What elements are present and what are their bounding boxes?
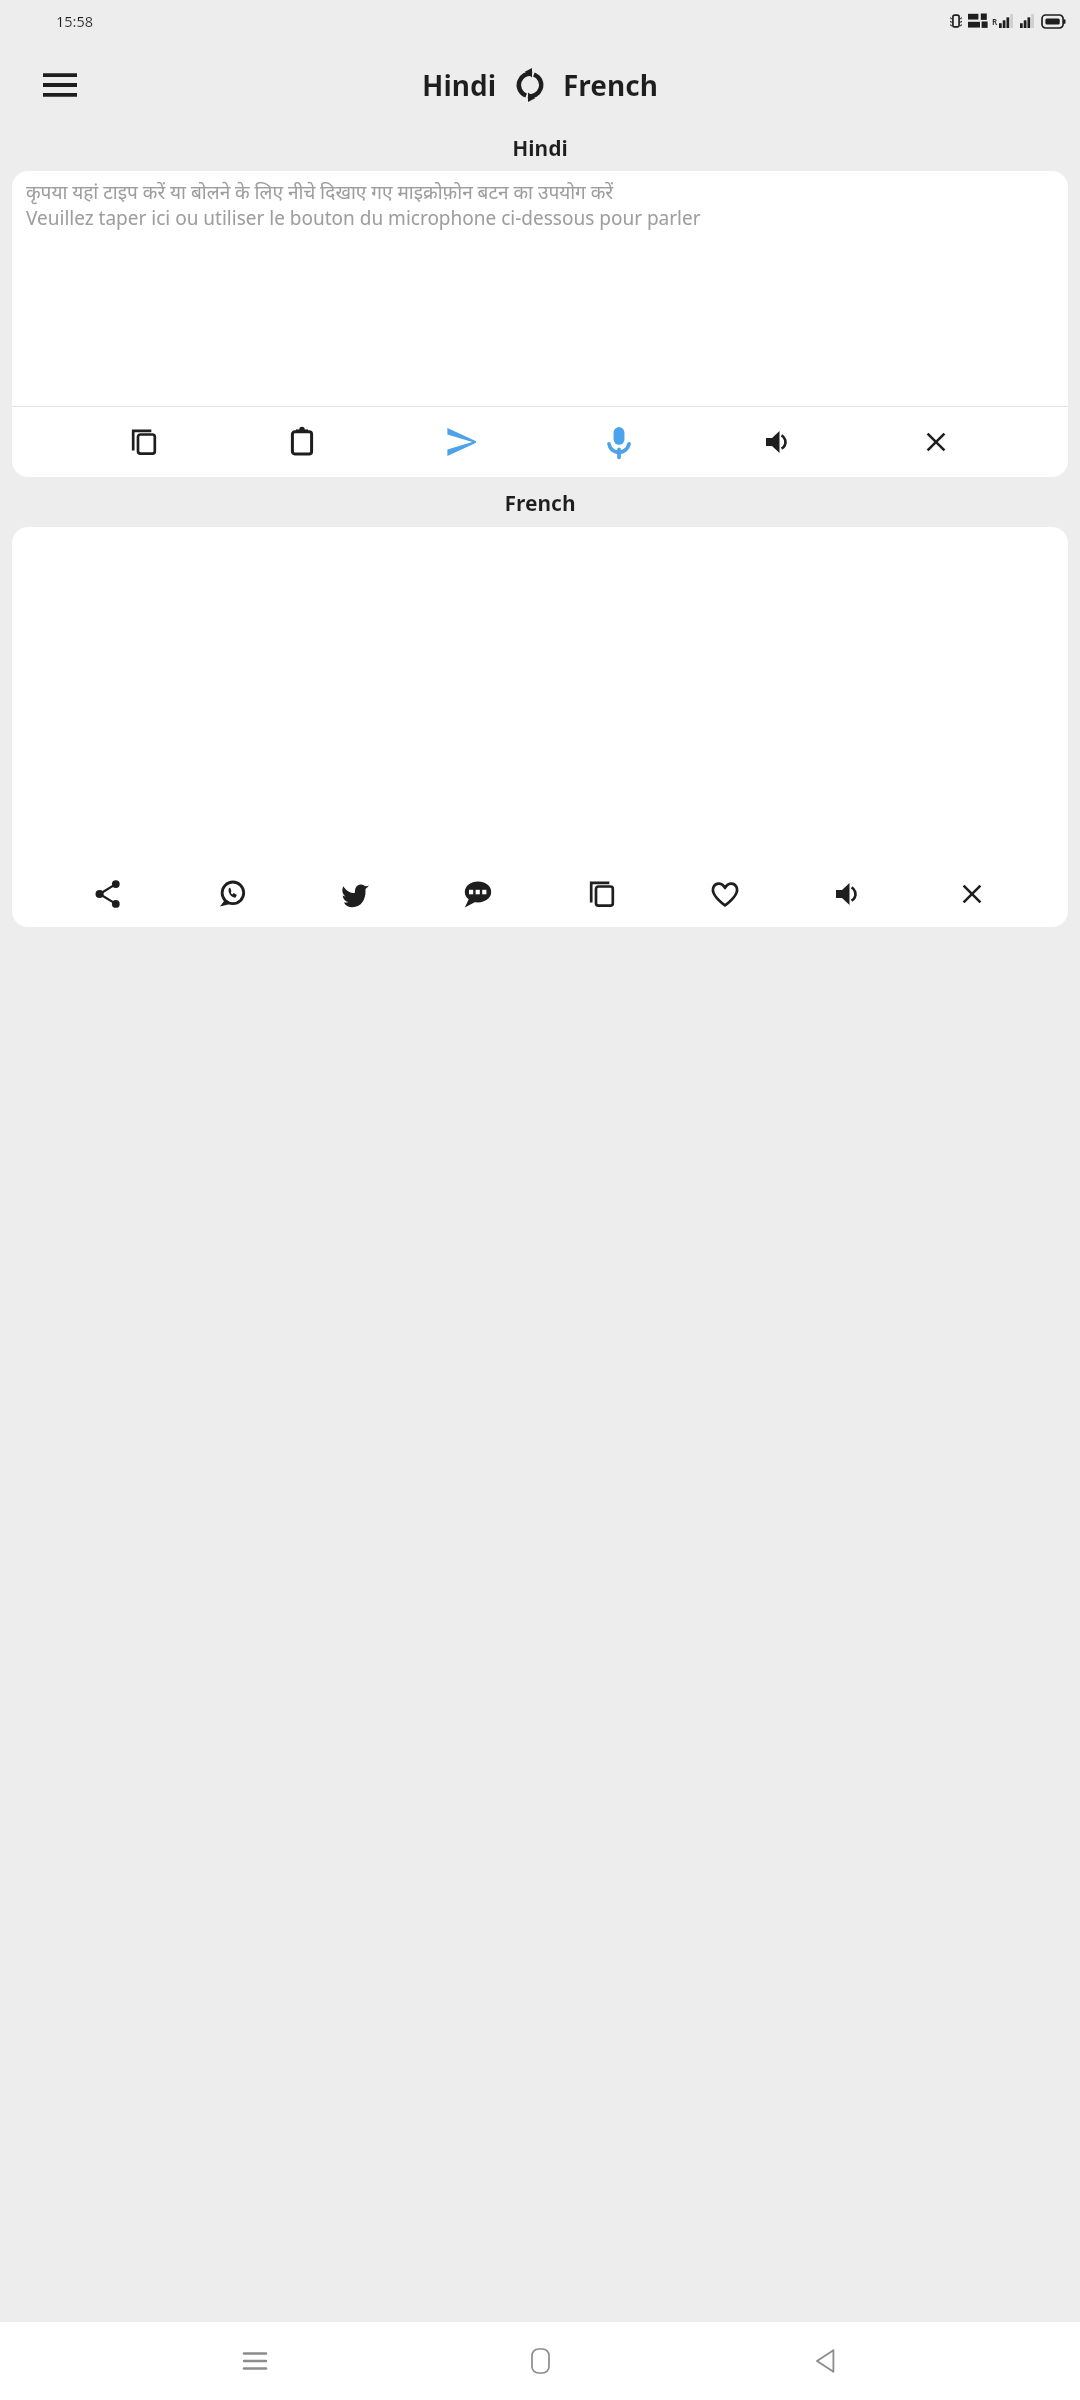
staticText: कृपया यहां टाइप करें या बोलने के लिए नीच…	[26, 179, 614, 205]
staticText: Hindi	[422, 66, 497, 104]
button[interactable]: Back	[795, 2331, 855, 2391]
button[interactable]: Share	[81, 867, 135, 921]
button[interactable]: Open navigation menu	[34, 59, 86, 111]
button[interactable]: Share on Twitter	[328, 867, 382, 921]
button[interactable]: Clear text	[909, 415, 963, 469]
button[interactable]: Add to favourites	[698, 867, 752, 921]
button[interactable]: French	[559, 62, 662, 108]
staticText: Veuillez taper ici ou utiliser le bouton…	[26, 205, 701, 231]
staticText: 15:58	[56, 11, 94, 31]
button[interactable]: Send on WhatsApp	[205, 867, 259, 921]
staticText: French	[504, 489, 576, 518]
button[interactable]: Paste	[275, 415, 329, 469]
button[interactable]: Copy translation	[575, 867, 629, 921]
button[interactable]: Copy	[117, 415, 171, 469]
button[interactable]: Home	[510, 2331, 570, 2391]
button[interactable]: कृपया यहां टाइप करें या बोलने के लिए नीच…	[12, 171, 1068, 406]
button[interactable]: Listen to translation	[821, 867, 875, 921]
button[interactable]: Swap languages	[513, 68, 547, 102]
button[interactable]: Speak with microphone	[592, 415, 646, 469]
button[interactable]: Send as SMS	[451, 867, 505, 921]
button[interactable]: Hindi	[418, 62, 501, 108]
button[interactable]: Recent apps	[225, 2331, 285, 2391]
button[interactable]: Clear translation	[945, 867, 999, 921]
staticText: French	[563, 66, 658, 104]
staticText: Hindi	[512, 134, 568, 163]
button[interactable]: Translate	[434, 415, 488, 469]
button[interactable]: Listen	[751, 415, 805, 469]
staticText: R	[992, 16, 998, 27]
